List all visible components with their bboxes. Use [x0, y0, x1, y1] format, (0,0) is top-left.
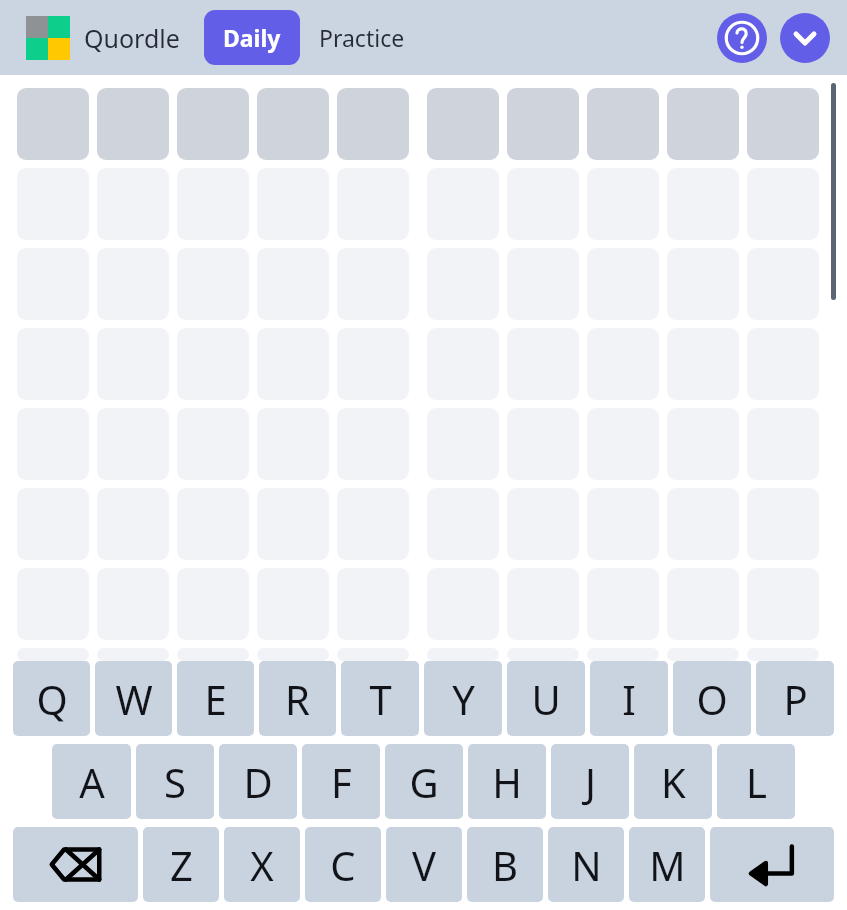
button[interactable]: [427, 88, 499, 160]
button[interactable]: P: [756, 661, 834, 736]
button[interactable]: Quordle logo: [26, 16, 70, 60]
button[interactable]: [257, 88, 329, 160]
button[interactable]: [587, 88, 659, 160]
button[interactable]: Enter: [710, 827, 834, 902]
button[interactable]: [507, 88, 579, 160]
button[interactable]: [97, 88, 169, 160]
button[interactable]: F: [302, 744, 380, 819]
button[interactable]: S: [136, 744, 214, 819]
button[interactable]: L: [717, 744, 795, 819]
button[interactable]: W: [95, 661, 172, 736]
button[interactable]: K: [634, 744, 712, 819]
button[interactable]: [177, 88, 249, 160]
button[interactable]: [747, 88, 819, 160]
button[interactable]: [337, 88, 409, 160]
button[interactable]: T: [341, 661, 419, 736]
button[interactable]: Practice: [300, 10, 424, 65]
button[interactable]: Z: [143, 827, 219, 902]
button[interactable]: O: [673, 661, 751, 736]
button[interactable]: G: [385, 744, 463, 819]
button[interactable]: Y: [424, 661, 502, 736]
button[interactable]: J: [551, 744, 629, 819]
button[interactable]: E: [177, 661, 254, 736]
button[interactable]: [667, 88, 739, 160]
button[interactable]: C: [305, 827, 381, 902]
button[interactable]: R: [259, 661, 336, 736]
button[interactable]: H: [468, 744, 546, 819]
button[interactable]: M: [629, 827, 705, 902]
button[interactable]: Backspace: [13, 827, 138, 902]
button[interactable]: V: [386, 827, 462, 902]
button[interactable]: B: [467, 827, 543, 902]
button[interactable]: Daily: [204, 10, 300, 65]
button[interactable]: U: [507, 661, 585, 736]
button[interactable]: I: [590, 661, 668, 736]
button[interactable]: D: [219, 744, 297, 819]
button[interactable]: [17, 88, 89, 160]
button[interactable]: Q: [13, 661, 90, 736]
